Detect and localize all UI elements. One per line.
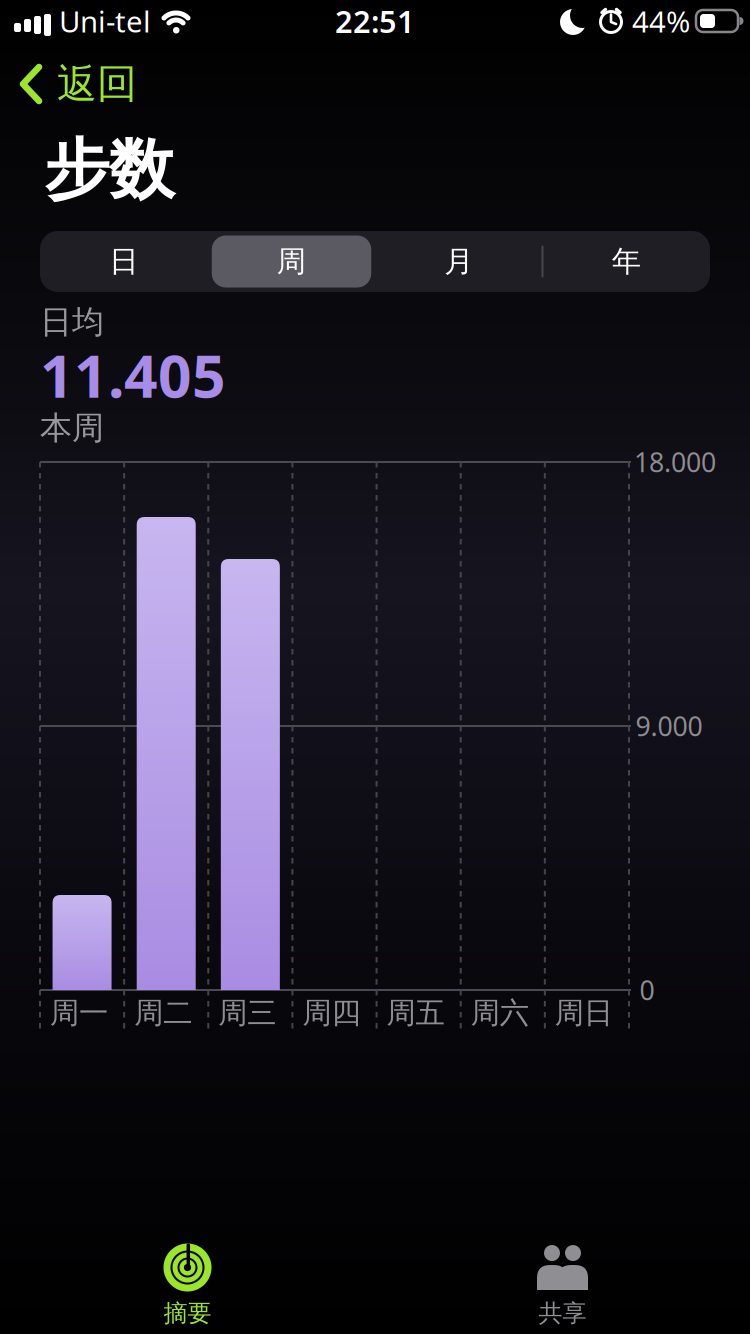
button[interactable]: 周: [207, 231, 375, 292]
staticText: 11.405: [40, 336, 226, 414]
staticText: 返回: [57, 59, 137, 108]
staticText: 周五: [387, 995, 445, 1031]
staticText: 共享: [538, 1298, 586, 1328]
staticText: 本周: [40, 408, 104, 448]
staticText: 周一: [50, 995, 108, 1031]
staticText: 年: [612, 243, 641, 279]
button[interactable]: 返回: [20, 59, 137, 108]
button[interactable]: 日: [40, 231, 207, 292]
staticText: 周: [277, 243, 306, 279]
button[interactable]: 年: [542, 231, 710, 292]
staticText: 摘要: [163, 1298, 211, 1328]
staticText: 日均: [40, 302, 104, 342]
staticText: 44%: [632, 1, 690, 40]
staticText: Uni-tel: [59, 1, 151, 40]
staticText: 周六: [471, 995, 529, 1031]
staticText: 9.000: [635, 708, 702, 744]
staticText: 月: [444, 243, 473, 279]
staticText: 周二: [134, 995, 192, 1031]
staticText: 周四: [302, 995, 360, 1031]
staticText: 周日: [555, 995, 613, 1031]
staticText: 步数: [44, 130, 174, 210]
staticText: 0: [639, 972, 654, 1008]
staticText: 周三: [218, 995, 276, 1031]
button[interactable]: 摘要: [0, 1243, 375, 1328]
staticText: 18.000: [634, 444, 716, 480]
staticText: 日: [109, 243, 138, 279]
button[interactable]: 月: [375, 231, 542, 292]
button[interactable]: 共享: [375, 1243, 750, 1328]
staticText: 22:51: [335, 1, 415, 41]
